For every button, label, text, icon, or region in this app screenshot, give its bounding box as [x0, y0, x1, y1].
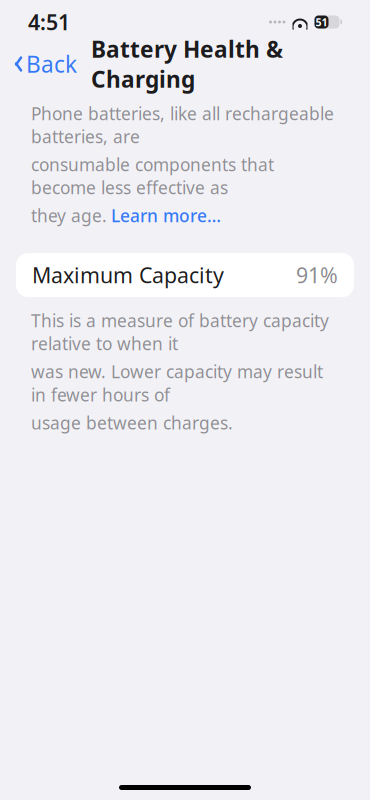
- staticText: they age.: [31, 204, 107, 227]
- staticText: Phone batteries, like all rechargeable b…: [31, 102, 334, 148]
- staticText: was new. Lower capacity may result in fe…: [31, 360, 323, 406]
- staticText: usage between charges.: [31, 411, 233, 434]
- staticText: 51: [315, 15, 327, 29]
- button[interactable]: Maximum Capacity: [16, 253, 354, 297]
- staticText: Battery Health & Charging: [91, 34, 283, 94]
- staticText: 91%: [296, 261, 338, 289]
- staticText: 4:51: [28, 8, 70, 36]
- staticText: This is a measure of battery capacity re…: [31, 309, 329, 355]
- staticText: Back: [26, 49, 77, 79]
- staticText: consumable components that become less e…: [31, 153, 274, 199]
- button[interactable]: Learn more…: [111, 204, 221, 227]
- staticText: Learn more…: [111, 204, 221, 227]
- staticText: Maximum Capacity: [32, 261, 224, 289]
- staticText: charging routine so it can wait to finis…: [31, 762, 300, 800]
- button[interactable]: Back: [0, 43, 83, 85]
